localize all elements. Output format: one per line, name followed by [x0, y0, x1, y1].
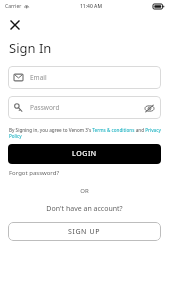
staticText: Email	[30, 73, 47, 82]
staticText: Don't have an account?	[0, 204, 169, 214]
button[interactable]: SIGN UP	[8, 222, 161, 241]
staticText: OR	[0, 187, 169, 195]
staticText: By Signing in, you agree to Venom 3's Te…	[9, 127, 163, 139]
staticText: Password	[30, 103, 60, 112]
button[interactable]: LOGIN	[8, 144, 161, 164]
button[interactable]: Password	[8, 96, 161, 119]
button[interactable]: Email	[8, 66, 161, 89]
staticText: LOGIN	[72, 149, 97, 159]
staticText: Carrier	[5, 3, 22, 10]
staticText: 11:40 AM	[80, 3, 102, 10]
button[interactable]: Forgot password?	[9, 169, 60, 177]
button[interactable]: Close	[7, 17, 23, 33]
button[interactable]: Show password	[143, 102, 155, 114]
staticText: SIGN UP	[68, 227, 101, 237]
staticText: Sign In	[9, 39, 52, 57]
